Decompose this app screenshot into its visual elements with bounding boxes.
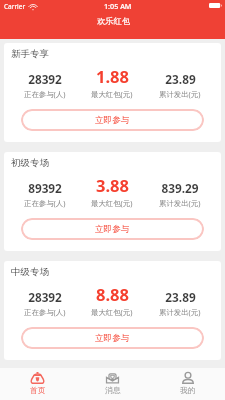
button[interactable]: 立即参与 bbox=[21, 327, 204, 349]
button[interactable]: 新手专享 bbox=[4, 43, 221, 142]
staticText: 首页 bbox=[30, 385, 46, 395]
staticText: 消息 bbox=[105, 385, 121, 395]
button[interactable]: 立即参与 bbox=[21, 218, 204, 240]
staticText: 23.89 bbox=[165, 289, 196, 305]
other: 消息 bbox=[106, 373, 119, 384]
staticText: 累计发出(元) bbox=[159, 198, 201, 208]
staticText: 28392 bbox=[28, 71, 62, 87]
staticText: 最大红包(元) bbox=[91, 307, 133, 317]
staticText: 立即参与 bbox=[95, 115, 130, 126]
staticText: 立即参与 bbox=[95, 224, 130, 235]
button[interactable]: 消息 bbox=[75, 368, 150, 400]
staticText: 1.88 bbox=[96, 65, 129, 87]
other: 首页 bbox=[30, 372, 45, 384]
button[interactable]: 首页 bbox=[0, 368, 75, 400]
button[interactable]: 我的 bbox=[150, 368, 225, 400]
staticText: 3.88 bbox=[96, 174, 129, 196]
button[interactable]: 立即参与 bbox=[21, 109, 204, 131]
staticText: 28392 bbox=[28, 289, 62, 305]
staticText: 立即参与 bbox=[95, 333, 130, 344]
staticText: 中级专场 bbox=[11, 266, 49, 278]
staticText: 正在参与(人) bbox=[24, 198, 66, 208]
staticText: 初级专场 bbox=[11, 157, 49, 169]
staticText: 1:05 AM bbox=[104, 1, 132, 11]
staticText: 新手专享 bbox=[11, 48, 49, 60]
staticText: 正在参与(人) bbox=[24, 307, 66, 317]
staticText: 累计发出(元) bbox=[159, 89, 201, 99]
staticText: 最大红包(元) bbox=[91, 89, 133, 99]
staticText: 最大红包(元) bbox=[91, 198, 133, 208]
button[interactable]: 初级专场 bbox=[4, 152, 221, 251]
other: 我的 bbox=[182, 372, 194, 384]
staticText: 欢乐红包 bbox=[97, 16, 131, 26]
staticText: 累计发出(元) bbox=[159, 307, 201, 317]
staticText: 89392 bbox=[28, 180, 62, 196]
staticText: 正在参与(人) bbox=[24, 89, 66, 99]
button[interactable]: 中级专场 bbox=[4, 261, 221, 360]
staticText: 23.89 bbox=[165, 71, 196, 87]
staticText: 我的 bbox=[180, 385, 196, 395]
staticText: 839.29 bbox=[161, 180, 199, 196]
staticText: Carrier bbox=[4, 2, 26, 11]
staticText: 8.88 bbox=[96, 283, 129, 305]
